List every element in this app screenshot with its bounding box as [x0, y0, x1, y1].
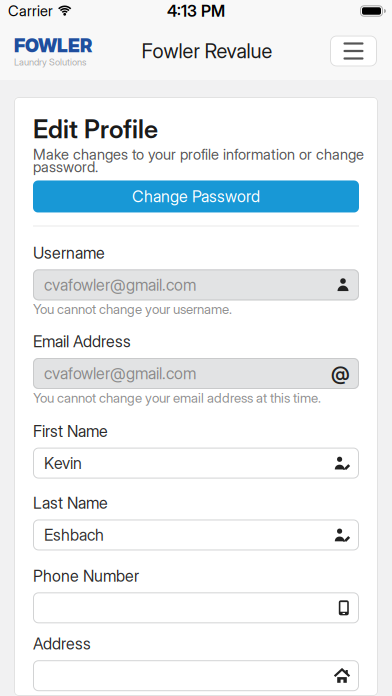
staticText: cvafowler@gmail.com [44, 364, 196, 383]
button[interactable]: Last Name [33, 519, 359, 550]
button[interactable]: Phone Number [33, 592, 359, 623]
staticText: Change Password [132, 187, 260, 206]
staticText: You cannot change your username. [33, 301, 232, 317]
staticText: cvafowler@gmail.com [44, 275, 196, 294]
staticText: First Name [33, 422, 108, 441]
button[interactable]: First Name [33, 448, 359, 479]
button[interactable]: Address [33, 660, 359, 691]
staticText: Laundry Solutions [14, 56, 86, 67]
staticText: Kevin [44, 454, 82, 472]
staticText: @ [331, 362, 350, 384]
staticText: Fowler Revalue [141, 39, 272, 63]
staticText: Email Address [33, 332, 131, 351]
staticText: Make changes to your profile information… [33, 146, 364, 163]
button[interactable]: Menu [330, 35, 377, 66]
staticText: FOWLER [14, 34, 92, 56]
staticText: Phone Number [33, 566, 139, 585]
staticText: Eshbach [44, 525, 104, 544]
staticText: 4:13 PM [167, 2, 225, 20]
button[interactable]: Change Password [33, 180, 359, 212]
staticText: Address [33, 634, 91, 653]
staticText: You cannot change your email address at … [33, 390, 321, 406]
staticText: Last Name [33, 494, 108, 512]
staticText: Username [33, 243, 105, 262]
staticText: Carrier [8, 2, 53, 20]
staticText: Edit Profile [33, 114, 158, 144]
staticText: password. [33, 158, 98, 175]
